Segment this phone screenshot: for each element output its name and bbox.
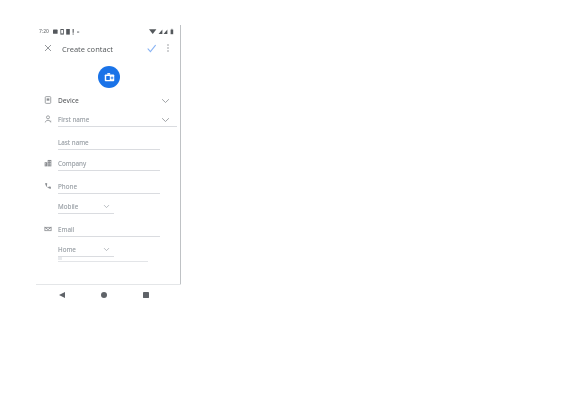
button[interactable]: More options — [158, 38, 178, 58]
button[interactable]: Mobile type — [36, 199, 181, 219]
staticText: Mobile — [58, 202, 79, 211]
button[interactable]: Phone — [36, 178, 181, 199]
button[interactable]: Save — [141, 38, 161, 58]
staticText: 7:20 — [39, 28, 49, 35]
button[interactable]: First name — [36, 111, 181, 132]
button[interactable]: Device — [36, 91, 181, 111]
button[interactable]: Home — [96, 287, 112, 303]
staticText: Home — [58, 245, 76, 254]
staticText: Phone — [58, 182, 77, 191]
button[interactable]: Back — [54, 287, 70, 303]
staticText: Company — [58, 159, 87, 168]
staticText: Create contact — [62, 44, 114, 54]
staticText: Email — [58, 225, 75, 234]
staticText: First name — [58, 115, 90, 124]
button[interactable]: Last name — [36, 134, 181, 155]
staticText: Last name — [58, 138, 89, 147]
button[interactable]: Company — [36, 155, 181, 176]
button[interactable]: Recents — [138, 287, 154, 303]
staticText: Device — [58, 96, 79, 105]
button[interactable]: Close — [38, 38, 58, 58]
button[interactable]: Add contact photo — [98, 66, 120, 88]
button[interactable]: Home type — [36, 242, 181, 262]
button[interactable]: Email — [36, 221, 181, 242]
